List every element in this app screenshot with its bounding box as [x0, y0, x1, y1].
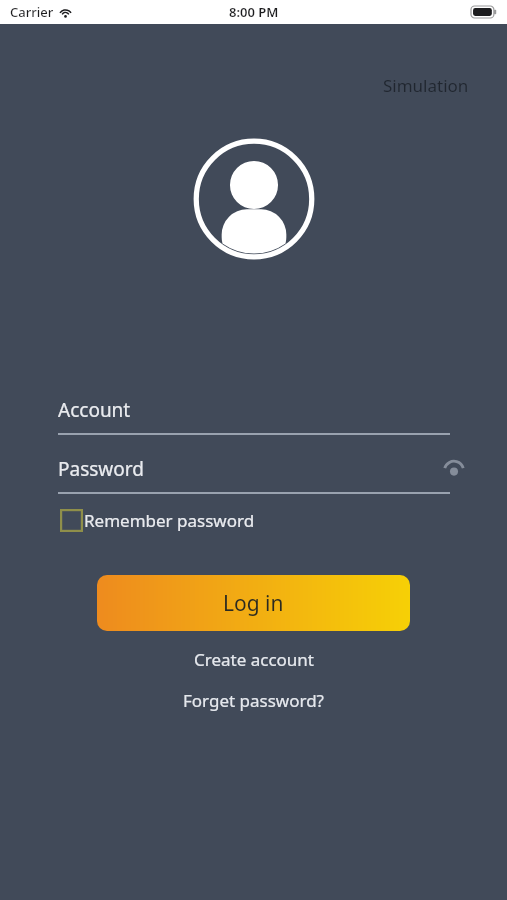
staticText: Carrier [10, 3, 54, 21]
staticText: Account [58, 397, 131, 423]
button[interactable]: Show password [441, 456, 467, 482]
staticText: Password [58, 456, 144, 482]
button[interactable]: Create account [186, 645, 322, 674]
staticText: Remember password [84, 509, 255, 532]
button[interactable]: Password [0, 446, 507, 492]
staticText: Log in [223, 589, 284, 618]
button[interactable]: Forget password? [175, 686, 332, 715]
button[interactable]: Simulation [381, 72, 471, 99]
other: Profile avatar [193, 138, 315, 260]
button[interactable]: Account [0, 387, 507, 433]
button[interactable]: Log in [97, 575, 410, 631]
staticText: 8:00 PM [229, 3, 279, 21]
staticText: Simulation [383, 74, 469, 97]
button[interactable]: Remember password [58, 505, 257, 536]
staticText: Create account [194, 648, 314, 671]
staticText: Forget password? [183, 689, 324, 712]
